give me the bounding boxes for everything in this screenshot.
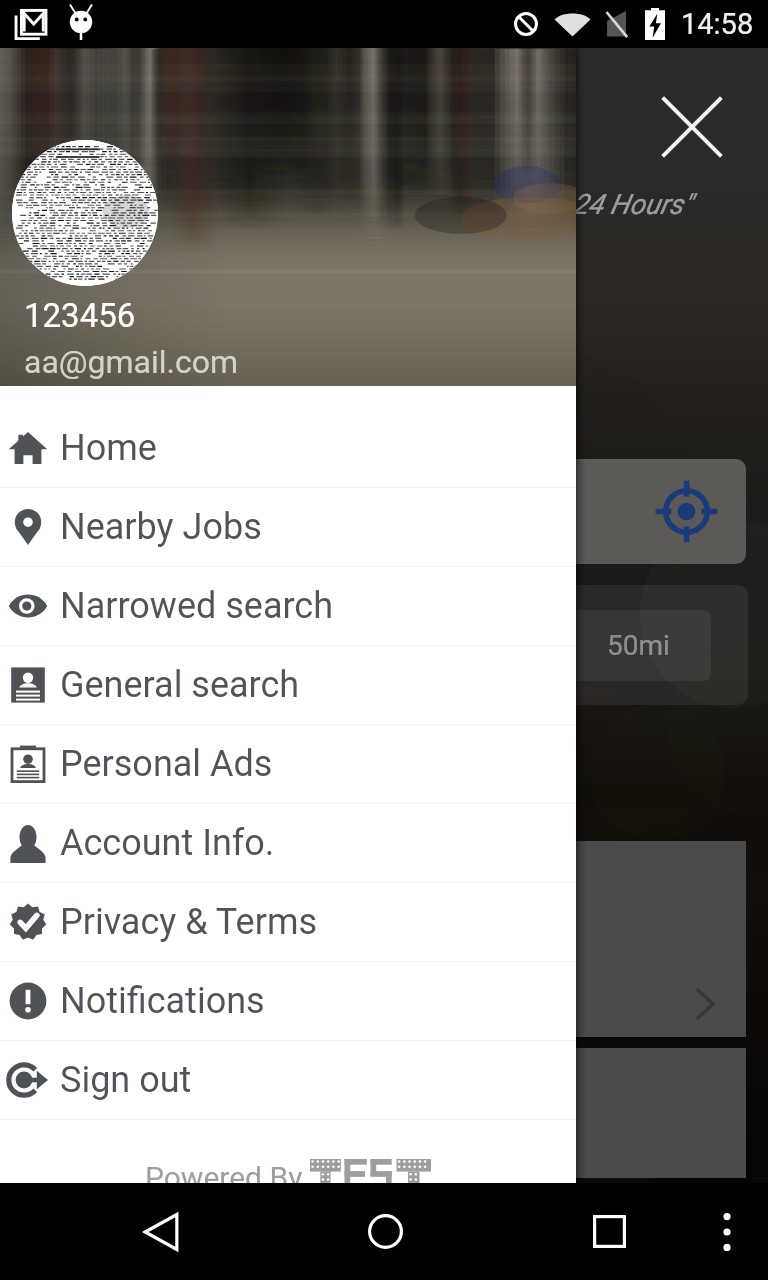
button[interactable] — [0, 1048, 746, 1178]
staticText: Nearby Jobs — [60, 506, 262, 548]
staticText: 50mi — [607, 629, 670, 662]
staticText: Account Info. — [60, 822, 275, 864]
button[interactable]: Privacy & Terms — [0, 883, 576, 961]
button[interactable]: Close — [644, 79, 740, 175]
button[interactable]: 50mi — [22, 585, 748, 705]
staticText: Powered By — [145, 1160, 310, 1195]
button[interactable]: Account Info. — [0, 804, 576, 882]
button[interactable]: Home — [0, 409, 576, 487]
staticText: 123456 — [24, 296, 136, 335]
button[interactable]: More options — [679, 1183, 768, 1280]
staticText: General search — [60, 664, 300, 706]
button[interactable]: Notifications — [0, 962, 576, 1040]
staticText: "Hot Food Open 24 Hours" — [375, 188, 692, 221]
button[interactable]: Nearby Jobs — [0, 488, 576, 566]
button[interactable]: My location — [22, 459, 746, 564]
button[interactable] — [0, 841, 746, 1037]
button[interactable]: Narrowed search — [0, 567, 576, 645]
staticText: Home — [60, 427, 157, 469]
other: My location — [655, 480, 718, 543]
button[interactable]: General search — [0, 646, 576, 724]
button[interactable]: Profile photo — [12, 140, 158, 286]
button[interactable]: Recent apps — [561, 1183, 657, 1280]
button[interactable]: Personal Ads — [0, 725, 576, 803]
button[interactable]: Home — [337, 1183, 433, 1280]
button[interactable]: Back — [113, 1183, 209, 1280]
staticText: Privacy & Terms — [60, 901, 318, 943]
staticText: Sign out — [60, 1059, 192, 1101]
staticText: Narrowed search — [60, 585, 334, 627]
button[interactable]: Sign out — [0, 1041, 576, 1119]
staticText: Notifications — [60, 980, 265, 1022]
staticText: 14:58 — [681, 7, 754, 41]
staticText: Personal Ads — [60, 743, 273, 785]
staticText: aa@gmail.com — [24, 343, 239, 381]
